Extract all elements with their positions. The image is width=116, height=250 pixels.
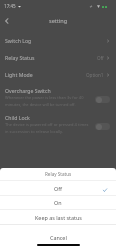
staticText: Switch Log: [5, 37, 32, 44]
button[interactable]: Overcharge Switch: [0, 84, 116, 111]
staticText: Overcharge Switch: [5, 87, 51, 94]
staticText: setting: [49, 17, 68, 25]
staticText: The device is powered off or pressed 4 t…: [5, 122, 92, 134]
button[interactable]: Relay Status: [0, 49, 116, 66]
button[interactable]: Cancel: [0, 225, 116, 250]
button[interactable]: Toggle: [95, 96, 110, 103]
staticText: Child Lock: [5, 114, 30, 121]
button[interactable]: Switch Log: [0, 32, 116, 49]
staticText: Off: [97, 55, 104, 61]
button[interactable]: Child Lock: [0, 111, 116, 138]
button[interactable]: Toggle: [95, 123, 110, 130]
staticText: 17:45: [4, 3, 16, 9]
staticText: Keep as last status: [35, 214, 82, 221]
button[interactable]: Keep as last status: [0, 210, 116, 224]
staticText: Cancel: [50, 234, 67, 241]
staticText: Relay Status: [45, 171, 72, 177]
staticText: Off: [54, 185, 62, 192]
staticText: Relay Status: [5, 54, 35, 61]
button[interactable]: On: [0, 196, 116, 209]
staticText: Option1: [86, 72, 104, 78]
staticText: Light Mode: [5, 71, 33, 78]
button[interactable]: Back: [0, 14, 14, 28]
staticText: Whenever the power is less than 3v for 4…: [5, 95, 92, 107]
button[interactable]: Light Mode: [0, 66, 116, 83]
staticText: On: [54, 199, 62, 206]
button[interactable]: Off: [0, 181, 116, 195]
